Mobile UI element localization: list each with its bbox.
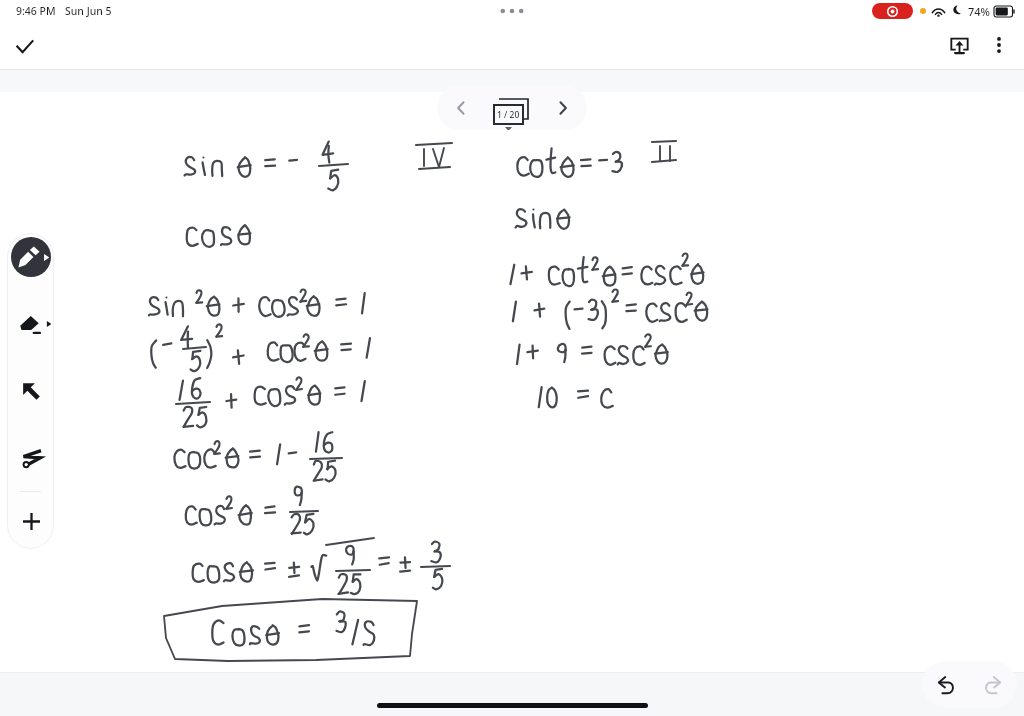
button[interactable]: Redo xyxy=(969,661,1017,708)
button[interactable]: Lasso tool xyxy=(11,438,51,478)
button[interactable]: Present xyxy=(939,26,979,66)
button[interactable]: Previous page xyxy=(441,85,481,130)
button[interactable]: Pen tool xyxy=(11,237,51,277)
staticText: 1 / 20 xyxy=(497,109,520,121)
button[interactable]: Next page xyxy=(543,85,583,130)
staticText: Sun Jun 5 xyxy=(65,4,112,18)
button[interactable]: Page 1 of 20 xyxy=(481,85,543,130)
button[interactable]: Eraser tool xyxy=(11,304,51,344)
button[interactable]: Undo xyxy=(922,661,970,708)
button[interactable]: Pointer tool xyxy=(11,371,51,411)
staticText: 74% xyxy=(968,4,990,19)
button[interactable]: Done xyxy=(4,26,44,66)
button[interactable]: More options xyxy=(979,26,1019,66)
button[interactable]: Add tool xyxy=(11,501,51,541)
staticText: 9:46 PM xyxy=(16,4,56,18)
